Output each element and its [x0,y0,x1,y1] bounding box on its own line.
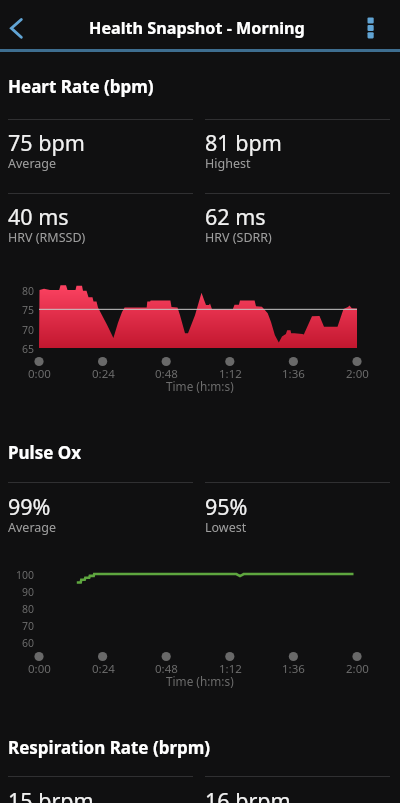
staticText: 99% [8,492,51,521]
staticText: 90 [21,585,34,597]
staticText: 80 [21,284,34,296]
staticText: 1:12 [219,366,242,382]
staticText: 15 brpm [8,786,94,803]
staticText: 1:36 [282,661,305,677]
staticText: 1:36 [282,366,305,382]
staticText: 0:48 [155,661,178,677]
staticText: 2:00 [346,366,369,382]
staticText: 0:00 [28,366,51,382]
staticText: Lowest [205,519,247,536]
staticText: 0:48 [155,366,178,382]
staticText: Highest [205,155,251,172]
staticText: 0:24 [92,661,115,677]
staticText: 65 [21,342,34,354]
staticText: Pulse Ox [8,441,82,464]
staticText: Heart Rate (bpm) [8,75,154,98]
staticText: 60 [21,636,34,648]
staticText: 100 [15,568,34,580]
staticText: 81 bpm [205,128,282,157]
staticText: 40 ms [8,202,69,231]
staticText: 0:24 [92,366,115,382]
staticText: Respiration Rate (brpm) [8,736,211,759]
staticText: 2:00 [346,661,369,677]
staticText: Average [8,155,57,172]
staticText: 1:12 [219,661,242,677]
staticText: 70 [21,323,34,335]
button[interactable]: More options [356,2,400,51]
staticText: HRV (RMSSD) [8,229,86,246]
staticText: Health Snapshot - Morning [89,17,305,39]
staticText: 16 brpm [205,786,291,803]
staticText: 75 bpm [8,128,85,157]
staticText: 62 ms [205,202,266,231]
staticText: HRV (SDRR) [205,229,272,246]
staticText: 95% [205,492,248,521]
staticText: Time (h:m:s) [166,673,234,689]
staticText: 75 [21,303,34,315]
button[interactable]: Back [0,0,34,49]
staticText: 70 [21,619,34,631]
staticText: Time (h:m:s) [166,378,234,394]
staticText: Average [8,519,57,536]
staticText: 0:00 [28,661,51,677]
staticText: 80 [21,602,34,614]
